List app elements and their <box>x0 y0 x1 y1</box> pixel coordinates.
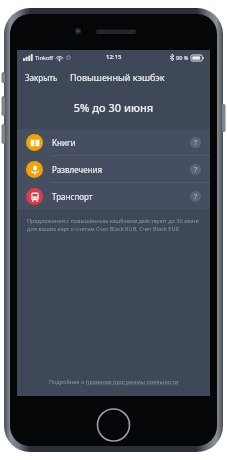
staticText: Развлечения <box>52 164 190 175</box>
staticText: Повышенный кэшбэк <box>70 71 165 83</box>
button[interactable]: Закрыть <box>17 69 66 86</box>
button[interactable]: Подробнее о категории Развлечения <box>190 164 201 175</box>
staticText: Предложения с повышенным кэшбэком действ… <box>27 217 200 233</box>
staticText: Подробнее о <box>49 378 86 386</box>
button[interactable]: Книги <box>17 129 210 155</box>
staticText: Закрыть <box>25 72 58 83</box>
staticText: ? <box>194 138 198 148</box>
button[interactable]: Подробнее о категории Книги <box>190 137 201 148</box>
staticText: 12:15 <box>106 53 122 61</box>
staticText: Tinkoff <box>35 54 53 61</box>
button[interactable]: Подробнее о категории Транспорт <box>190 191 201 202</box>
staticText: Книги <box>52 137 190 148</box>
button[interactable]: Подробнее о <box>17 372 210 392</box>
staticText: 5% до 30 июня <box>17 100 210 115</box>
staticText: ? <box>194 192 198 202</box>
staticText: правилах программы лояльности <box>86 378 179 386</box>
staticText: Транспорт <box>52 191 190 202</box>
staticText: ? <box>194 165 198 175</box>
button[interactable]: Развлечения <box>17 156 210 182</box>
staticText: 90 % <box>176 54 189 61</box>
button[interactable]: Транспорт <box>17 183 210 209</box>
